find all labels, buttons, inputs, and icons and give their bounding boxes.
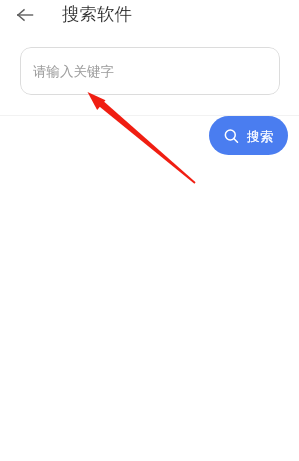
- staticText: 搜索: [247, 128, 273, 144]
- button[interactable]: Back: [11, 0, 39, 30]
- button[interactable]: 请输入关键字: [20, 47, 280, 95]
- staticText: 搜索软件: [62, 3, 132, 25]
- button[interactable]: 搜索: [209, 116, 288, 155]
- staticText: 请输入关键字: [33, 63, 114, 80]
